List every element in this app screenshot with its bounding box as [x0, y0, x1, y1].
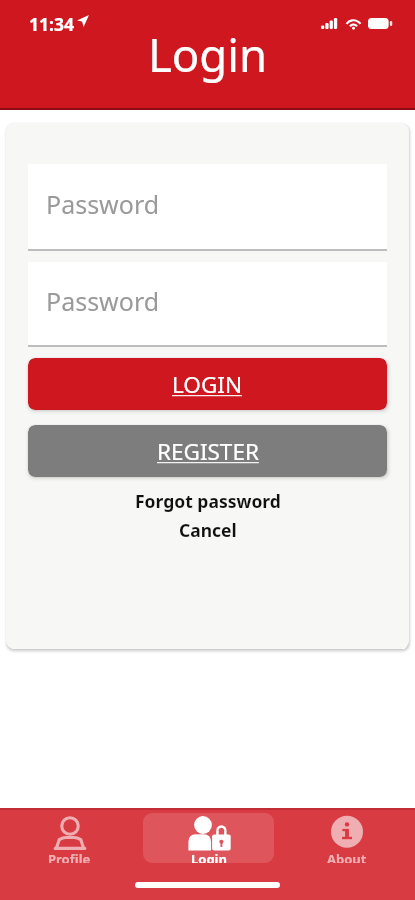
staticText: LOGIN: [172, 369, 243, 400]
button[interactable]: Password: [28, 262, 387, 345]
staticText: Login: [148, 23, 268, 85]
staticText: REGISTER: [157, 436, 259, 467]
staticText: Cancel: [179, 518, 237, 542]
button[interactable]: About: [281, 813, 412, 863]
button[interactable]: Password: [28, 164, 387, 249]
button[interactable]: LOGIN: [28, 358, 387, 410]
staticText: Forgot password: [135, 489, 281, 513]
button[interactable]: Profile: [4, 813, 135, 863]
button[interactable]: REGISTER: [28, 425, 387, 477]
staticText: Password: [46, 187, 160, 221]
button[interactable]: Login: [143, 813, 274, 863]
staticText: About: [327, 850, 367, 863]
staticText: Password: [46, 284, 160, 318]
staticText: 11:34: [29, 12, 74, 36]
button[interactable]: Forgot password: [28, 486, 387, 515]
staticText: Login: [191, 850, 227, 863]
staticText: Profile: [48, 850, 91, 863]
button[interactable]: Cancel: [28, 515, 387, 544]
